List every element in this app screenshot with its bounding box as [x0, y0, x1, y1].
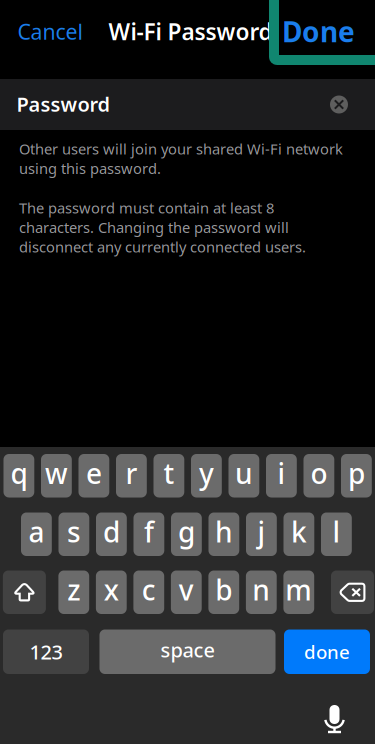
staticText: g [178, 513, 195, 550]
button[interactable]: m [283, 570, 314, 614]
staticText: x [104, 571, 119, 608]
button[interactable]: Delete [331, 570, 374, 614]
staticText: w [45, 455, 68, 492]
button[interactable]: e [78, 454, 109, 497]
staticText: s [67, 513, 81, 550]
staticText: The password must contain at least 8 cha… [19, 198, 306, 256]
button[interactable]: space [99, 629, 275, 674]
button[interactable]: Shift [3, 570, 46, 614]
button[interactable]: y [191, 454, 222, 497]
button[interactable]: d [96, 512, 127, 556]
button[interactable]: o [303, 454, 334, 497]
staticText: m [285, 571, 312, 608]
button[interactable]: n [246, 570, 277, 614]
staticText: Password [16, 91, 110, 117]
button[interactable]: v [171, 570, 202, 614]
button[interactable]: b [208, 570, 239, 614]
staticText: k [291, 513, 307, 550]
button[interactable]: l [321, 512, 352, 556]
button[interactable]: f [133, 512, 164, 556]
staticText: p [348, 455, 365, 492]
button[interactable]: g [171, 512, 202, 556]
staticText: z [67, 571, 80, 608]
staticText: h [215, 513, 233, 550]
staticText: space [160, 636, 214, 663]
button[interactable]: Cancel [17, 9, 97, 53]
button[interactable]: c [133, 570, 164, 614]
button[interactable]: 123 [3, 629, 89, 674]
button[interactable]: s [58, 512, 89, 556]
staticText: done [304, 639, 350, 664]
staticText: o [310, 455, 327, 492]
button[interactable]: i [266, 454, 297, 497]
button[interactable]: done [284, 629, 370, 674]
button[interactable]: w [41, 454, 72, 497]
staticText: n [252, 571, 270, 608]
staticText: Done [282, 13, 355, 50]
staticText: f [144, 513, 154, 550]
button[interactable]: q [3, 454, 34, 497]
staticText: d [103, 513, 120, 550]
button[interactable]: h [208, 512, 239, 556]
button[interactable]: Dictate [318, 701, 350, 737]
staticText: j [257, 513, 265, 550]
staticText: v [179, 571, 194, 608]
staticText: a [28, 513, 44, 550]
button[interactable]: j [246, 512, 277, 556]
staticText: l [332, 513, 340, 550]
staticText: q [10, 455, 27, 492]
button[interactable]: p [341, 454, 372, 497]
staticText: c [142, 571, 156, 608]
button[interactable]: a [21, 512, 52, 556]
staticText: b [215, 571, 232, 608]
button[interactable]: Done [274, 0, 375, 74]
button[interactable]: Clear text [325, 90, 353, 118]
button[interactable]: z [58, 570, 89, 614]
staticText: Cancel [17, 17, 83, 46]
staticText: r [125, 455, 137, 492]
staticText: Other users will join your shared Wi-Fi … [19, 139, 343, 178]
button[interactable]: x [96, 570, 127, 614]
staticText: Wi-Fi Password [108, 16, 272, 46]
button[interactable]: u [228, 454, 259, 497]
button[interactable]: r [116, 454, 147, 497]
staticText: e [86, 455, 102, 492]
button[interactable]: k [283, 512, 314, 556]
staticText: i [277, 455, 285, 492]
staticText: u [235, 455, 253, 492]
staticText: t [163, 455, 174, 492]
staticText: 123 [29, 638, 62, 665]
button[interactable]: t [153, 454, 184, 497]
staticText: y [199, 455, 214, 492]
